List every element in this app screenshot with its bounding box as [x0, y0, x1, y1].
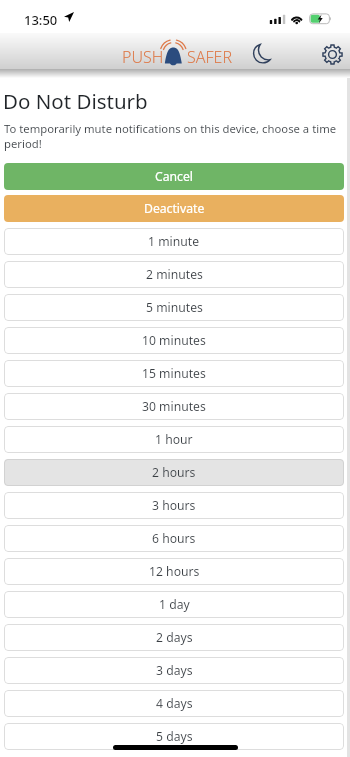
button[interactable]: Settings [318, 40, 346, 68]
staticText: 3 hours [152, 497, 196, 514]
button[interactable]: 3 hours [4, 492, 344, 519]
staticText: 6 hours [152, 530, 196, 547]
button[interactable]: 30 minutes [4, 393, 344, 420]
staticText: 4 days [156, 695, 193, 712]
button[interactable]: 6 hours [4, 525, 344, 552]
staticText: 1 minute [148, 233, 200, 250]
button[interactable]: 2 hours [4, 459, 344, 486]
staticText: 1 hour [155, 431, 193, 448]
button[interactable]: Cancel [4, 163, 344, 190]
button[interactable]: 4 days [4, 690, 344, 717]
staticText: Do Not Disturb [3, 87, 148, 115]
button[interactable]: Do Not Disturb [249, 39, 277, 67]
staticText: 3 days [156, 662, 193, 679]
button[interactable]: 1 day [4, 591, 344, 618]
staticText: SAFER [187, 46, 232, 68]
button[interactable]: 12 hours [4, 558, 344, 585]
staticText: 10 minutes [142, 332, 206, 349]
button[interactable]: Deactivate [4, 195, 344, 222]
staticText: 15 minutes [142, 365, 206, 382]
button[interactable]: 3 days [4, 657, 344, 684]
staticText: Deactivate [144, 200, 205, 217]
button[interactable]: 2 days [4, 624, 344, 651]
staticText: 5 minutes [146, 299, 203, 316]
button[interactable]: 1 hour [4, 426, 344, 453]
button[interactable]: 5 days [4, 723, 344, 750]
staticText: Cancel [155, 168, 193, 185]
staticText: 30 minutes [142, 398, 206, 415]
staticText: 1 day [159, 596, 190, 613]
button[interactable]: 1 minute [4, 228, 344, 255]
staticText: To temporarily mute notifications on thi… [4, 121, 344, 151]
staticText: 13:50 [24, 11, 58, 29]
staticText: 12 hours [149, 563, 200, 580]
button[interactable]: 10 minutes [4, 327, 344, 354]
staticText: 2 days [156, 629, 193, 646]
staticText: 5 days [156, 728, 193, 745]
staticText: 2 minutes [146, 266, 203, 283]
button[interactable]: 5 minutes [4, 294, 344, 321]
button[interactable]: 2 minutes [4, 261, 344, 288]
staticText: PUSH [122, 46, 164, 68]
button[interactable]: 15 minutes [4, 360, 344, 387]
staticText: 2 hours [152, 464, 196, 481]
